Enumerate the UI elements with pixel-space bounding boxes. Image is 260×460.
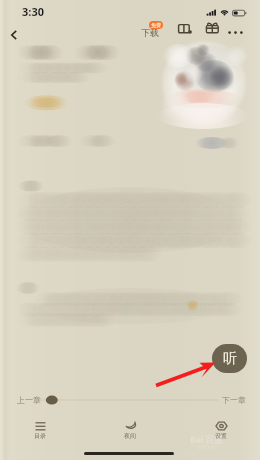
button[interactable]: 下载	[139, 21, 161, 40]
button[interactable]: 下一章	[219, 392, 249, 408]
button[interactable]: 夜间	[114, 419, 146, 442]
staticText: 上一章	[17, 395, 41, 405]
button[interactable]: 目录	[24, 419, 56, 442]
staticText: 夜间	[124, 432, 136, 440]
staticText: 3:30	[22, 4, 44, 19]
button[interactable]: 设置	[205, 419, 237, 442]
button[interactable]: 听书	[212, 344, 247, 373]
staticText: 设置	[215, 432, 227, 440]
button[interactable]: 上一章	[14, 392, 44, 408]
staticText: 免费	[151, 22, 161, 28]
staticText: 下载	[141, 27, 159, 38]
button[interactable]: 更多	[227, 26, 243, 36]
staticText: 听	[223, 350, 237, 368]
button[interactable]: 加入书架	[176, 23, 193, 38]
button[interactable]: 礼物	[204, 22, 221, 38]
staticText: Bai 百度	[190, 434, 223, 446]
staticText: 下一章	[222, 395, 246, 405]
staticText: 目录	[34, 432, 46, 440]
button[interactable]: 返回	[5, 26, 23, 44]
